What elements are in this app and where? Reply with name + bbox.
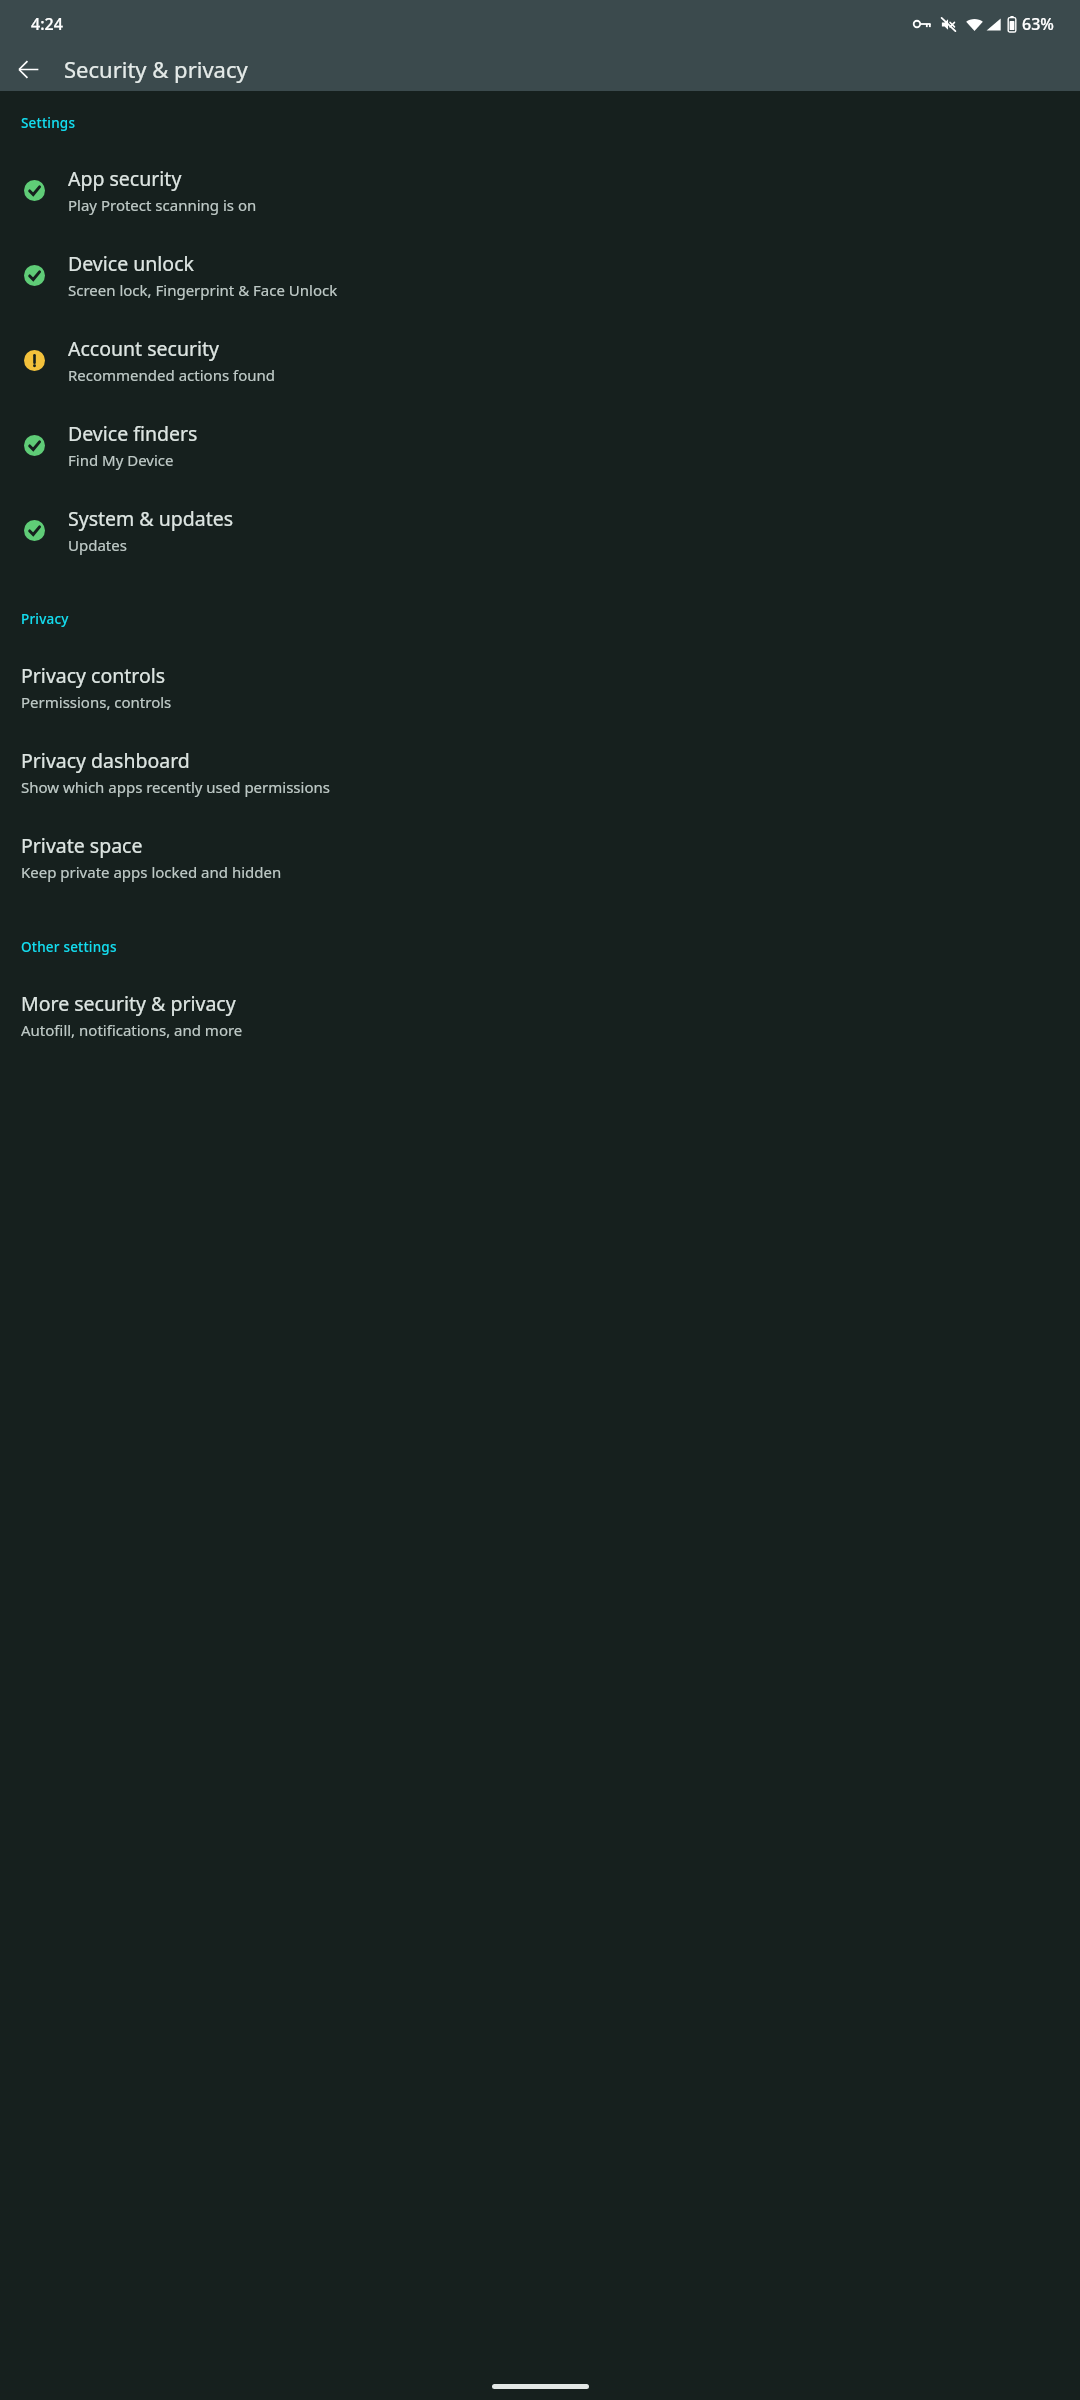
button[interactable]: Device unlock	[0, 235, 1080, 315]
button[interactable]: Privacy dashboard	[0, 731, 1080, 813]
staticText: System & updates	[68, 505, 234, 532]
button[interactable]: Account security	[0, 320, 1080, 400]
staticText: Account security	[68, 335, 220, 362]
button[interactable]: Device finders	[0, 405, 1080, 485]
staticText: 4:24	[31, 13, 63, 35]
staticText: Screen lock, Fingerprint & Face Unlock	[68, 280, 338, 300]
staticText: Privacy controls	[21, 662, 166, 689]
staticText: App security	[68, 165, 182, 192]
staticText: Device finders	[68, 420, 198, 447]
staticText: Device unlock	[68, 250, 194, 277]
staticText: 63%	[1022, 13, 1054, 35]
staticText: Other settings	[21, 938, 1080, 956]
button[interactable]: Private space	[0, 816, 1080, 898]
staticText: Recommended actions found	[68, 365, 275, 385]
staticText: Keep private apps locked and hidden	[21, 862, 282, 882]
button[interactable]: Privacy controls	[0, 646, 1080, 728]
button[interactable]: Back	[8, 49, 48, 89]
staticText: Settings	[21, 114, 1080, 132]
staticText: Updates	[68, 535, 127, 555]
staticText: Play Protect scanning is on	[68, 195, 257, 215]
staticText: More security & privacy	[21, 990, 236, 1017]
staticText: Permissions, controls	[21, 692, 172, 712]
staticText: Private space	[21, 832, 143, 859]
staticText: Autofill, notifications, and more	[21, 1020, 243, 1040]
staticText: Security & privacy	[64, 54, 248, 84]
button[interactable]: More security & privacy	[0, 974, 1080, 1056]
button[interactable]: App security	[0, 150, 1080, 230]
staticText: Show which apps recently used permission…	[21, 777, 330, 797]
staticText: Privacy dashboard	[21, 747, 190, 774]
staticText: Privacy	[21, 610, 1080, 628]
staticText: Find My Device	[68, 450, 174, 470]
button[interactable]: System & updates	[0, 490, 1080, 570]
